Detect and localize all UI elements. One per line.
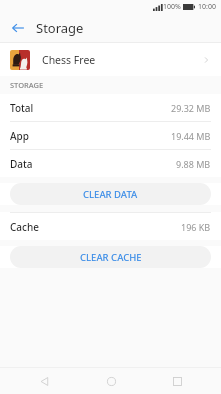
button[interactable]: Total bbox=[0, 94, 221, 121]
button[interactable]: CLEAR CACHE bbox=[10, 246, 211, 268]
staticText: Cache bbox=[10, 220, 39, 234]
staticText: CLEAR DATA bbox=[83, 188, 138, 201]
button[interactable]: Cache bbox=[0, 213, 221, 240]
staticText: 19.44 MB bbox=[171, 130, 211, 142]
staticText: 196 KB bbox=[181, 221, 211, 233]
button[interactable]: Data bbox=[0, 150, 221, 177]
staticText: Total bbox=[10, 101, 34, 115]
staticText: Storage bbox=[36, 19, 84, 37]
staticText: CLEAR CACHE bbox=[80, 251, 142, 264]
button[interactable]: Recents bbox=[155, 368, 199, 394]
staticText: 29.32 MB bbox=[171, 102, 211, 114]
button[interactable]: Chess Free bbox=[0, 43, 221, 76]
staticText: 100% bbox=[163, 2, 181, 12]
button[interactable]: App bbox=[0, 122, 221, 149]
staticText: 10:00 bbox=[198, 2, 216, 12]
staticText: Data bbox=[10, 157, 33, 171]
button[interactable]: CLEAR DATA bbox=[10, 183, 211, 205]
staticText: 9.88 MB bbox=[176, 158, 211, 170]
staticText: Chess Free bbox=[42, 53, 96, 67]
button[interactable]: Back bbox=[22, 368, 66, 394]
staticText: App bbox=[10, 129, 29, 143]
staticText: STORAGE bbox=[10, 80, 44, 90]
button[interactable]: Back bbox=[0, 14, 36, 42]
button[interactable]: Home bbox=[89, 368, 133, 394]
